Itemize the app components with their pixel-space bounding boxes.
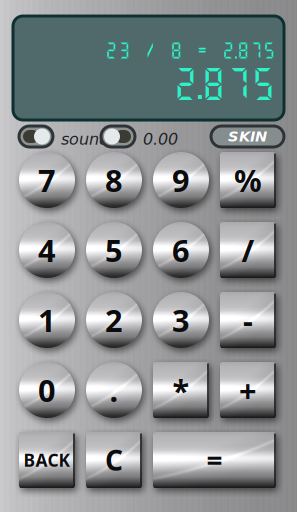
button[interactable]: Sound on bbox=[19, 126, 53, 147]
staticText: 2.875 bbox=[173, 62, 276, 103]
staticText: 1 bbox=[38, 300, 56, 340]
staticText: / bbox=[241, 230, 254, 270]
staticText: 0.00 bbox=[143, 130, 178, 149]
staticText: SKIN bbox=[228, 128, 267, 145]
staticText: 4 bbox=[38, 230, 56, 270]
button[interactable]: . bbox=[86, 362, 142, 418]
staticText: + bbox=[239, 370, 257, 410]
staticText: = bbox=[206, 441, 222, 479]
staticText: * bbox=[172, 370, 189, 410]
button[interactable]: 2 bbox=[86, 292, 142, 348]
button[interactable]: + bbox=[220, 362, 276, 418]
staticText: - bbox=[243, 300, 253, 340]
button[interactable]: 8 bbox=[86, 152, 142, 208]
staticText: 6 bbox=[172, 230, 190, 270]
button[interactable]: = bbox=[153, 432, 276, 488]
staticText: 9 bbox=[172, 160, 190, 200]
button[interactable]: - bbox=[220, 292, 276, 348]
staticText: 5 bbox=[105, 230, 123, 270]
button[interactable]: Decimals off bbox=[101, 126, 135, 147]
button[interactable]: 6 bbox=[153, 222, 209, 278]
staticText: BACK bbox=[23, 448, 70, 471]
button[interactable]: 3 bbox=[153, 292, 209, 348]
staticText: 0 bbox=[38, 370, 56, 410]
staticText: % bbox=[234, 160, 262, 200]
button[interactable]: BACK bbox=[19, 432, 75, 488]
button[interactable]: SKIN bbox=[211, 126, 284, 147]
button[interactable]: 7 bbox=[19, 152, 75, 208]
staticText: 23 / 8 = 2.875 bbox=[105, 40, 276, 60]
button[interactable]: 1 bbox=[19, 292, 75, 348]
button[interactable]: / bbox=[220, 222, 276, 278]
button[interactable]: C bbox=[86, 432, 142, 488]
button[interactable]: % bbox=[220, 152, 276, 208]
staticText: sound bbox=[61, 130, 109, 149]
button[interactable]: 4 bbox=[19, 222, 75, 278]
staticText: C bbox=[105, 441, 123, 479]
button[interactable]: 5 bbox=[86, 222, 142, 278]
staticText: 7 bbox=[38, 160, 56, 200]
staticText: 3 bbox=[172, 300, 190, 340]
button[interactable]: * bbox=[153, 362, 209, 418]
staticText: . bbox=[109, 370, 118, 410]
button[interactable]: 9 bbox=[153, 152, 209, 208]
staticText: 8 bbox=[105, 160, 123, 200]
staticText: 2 bbox=[105, 300, 123, 340]
button[interactable]: 0 bbox=[19, 362, 75, 418]
